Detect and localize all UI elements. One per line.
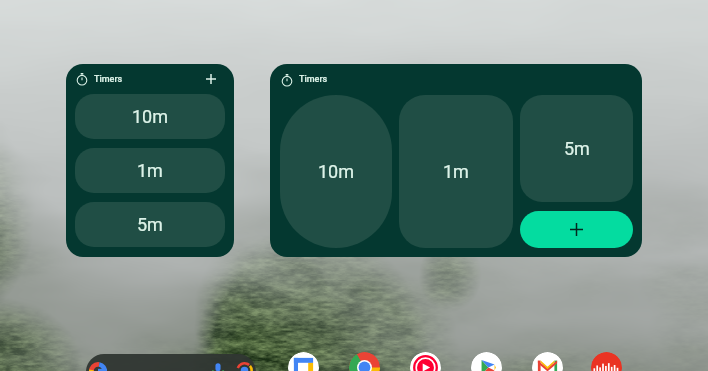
button[interactable]: 5m [75,202,225,247]
button[interactable]: Add timer [520,211,633,248]
staticText: 5m [564,138,590,159]
button[interactable]: Search [86,354,256,371]
staticText: 10m [132,106,169,127]
button[interactable]: 10m [75,94,225,139]
button[interactable]: 1m [399,95,513,248]
staticText: Timers [299,74,328,85]
staticText: 5m [137,214,163,235]
staticText: 1m [443,161,469,182]
staticText: Timers [94,74,123,85]
staticText: 1m [137,160,163,181]
button[interactable]: Chrome [349,352,380,371]
button[interactable]: Gmail [532,352,563,371]
staticText: 10m [318,161,355,182]
button[interactable]: Calendar [288,352,319,371]
button[interactable]: 1m [75,148,225,193]
button[interactable]: Recorder [591,352,622,371]
button[interactable]: 10m [280,95,392,248]
button[interactable]: Add timer [198,64,224,94]
button[interactable]: 5m [520,95,633,202]
button[interactable]: Play Store [471,352,502,371]
button[interactable]: YouTube Music [410,352,441,371]
